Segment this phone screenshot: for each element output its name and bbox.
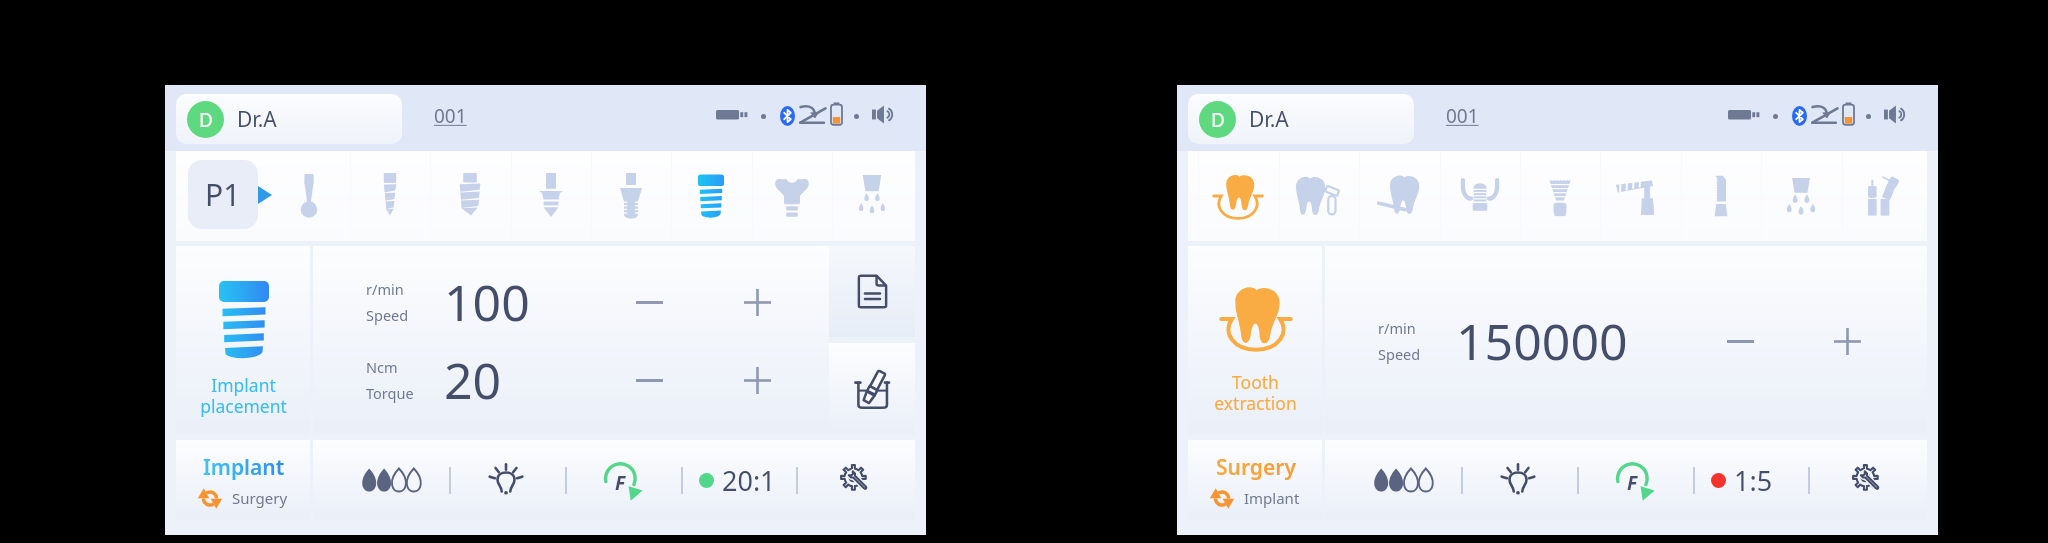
button[interactable]: Light — [1489, 456, 1547, 504]
button[interactable]: Rotation direction — [593, 456, 651, 504]
staticText: Implant — [203, 453, 285, 482]
button[interactable]: Tool 6 — [671, 151, 751, 241]
button[interactable]: Tool 7 — [1681, 151, 1761, 241]
button[interactable]: Decrease Torque — [622, 353, 676, 407]
staticText: F — [1627, 470, 1638, 496]
button[interactable]: D — [1188, 94, 1414, 144]
staticText: r/min — [366, 279, 404, 299]
button[interactable]: Tool 5 — [591, 151, 671, 241]
staticText: Surgery — [232, 488, 288, 508]
button[interactable]: Tool 3 — [1359, 151, 1439, 241]
button[interactable]: Increase Speed — [1820, 314, 1874, 368]
staticText: Implant — [1244, 488, 1300, 508]
staticText: Implant placement — [200, 373, 287, 418]
button[interactable]: Tool 1 — [1198, 151, 1278, 241]
staticText: Dr.A — [237, 105, 277, 134]
staticText: Ncm — [366, 357, 398, 377]
button[interactable]: Settings — [1839, 456, 1897, 504]
button[interactable]: Calibrate — [829, 343, 915, 435]
staticText: Speed — [1378, 344, 1421, 364]
staticText: P1 — [205, 174, 241, 215]
staticText: r/min — [1378, 318, 1416, 338]
button[interactable]: Settings — [827, 456, 885, 504]
staticText: Tooth extraction — [1214, 370, 1297, 415]
button[interactable]: Increase Speed — [730, 275, 784, 329]
staticText: 150000 — [1456, 307, 1628, 375]
button[interactable]: P1 — [188, 160, 258, 229]
button[interactable]: Tool 2 — [1279, 151, 1359, 241]
button[interactable]: Tool 8 — [832, 151, 912, 241]
staticText: 1:5 — [1734, 462, 1773, 499]
button[interactable]: 1:5 — [1711, 456, 1773, 504]
staticText: D — [1211, 107, 1225, 133]
button[interactable]: Tool 2 — [350, 151, 430, 241]
button[interactable]: Increase Torque — [730, 353, 784, 407]
button[interactable]: Implant — [176, 440, 310, 520]
button[interactable]: Tool 8 — [1761, 151, 1841, 241]
staticText: 001 — [1446, 103, 1479, 129]
button[interactable]: Rotation direction — [1605, 456, 1663, 504]
button[interactable]: 001 — [1446, 103, 1479, 129]
button[interactable]: Light — [477, 456, 535, 504]
staticText: 001 — [434, 103, 467, 129]
button[interactable]: Implant placement — [176, 246, 310, 435]
button[interactable]: Decrease Speed — [1713, 314, 1767, 368]
button[interactable]: Tool 5 — [1520, 151, 1600, 241]
staticText: 100 — [444, 268, 530, 336]
button[interactable]: Surgery — [1188, 440, 1322, 520]
button[interactable]: D — [176, 94, 402, 144]
staticText: D — [199, 107, 213, 133]
staticText: F — [615, 470, 626, 496]
button[interactable]: Report — [829, 246, 915, 337]
button[interactable]: Irrigation level — [1365, 456, 1441, 504]
button[interactable]: Irrigation level — [353, 456, 429, 504]
button[interactable]: Tool 3 — [430, 151, 510, 241]
button[interactable]: Tool 6 — [1600, 151, 1680, 241]
button[interactable]: Tool 4 — [1440, 151, 1520, 241]
button[interactable]: 20:1 — [699, 456, 776, 504]
staticText: Torque — [366, 383, 414, 403]
button[interactable]: Tooth extraction — [1188, 246, 1322, 435]
staticText: 20 — [444, 346, 502, 414]
button[interactable]: Tool 1 — [269, 151, 349, 241]
button[interactable]: Decrease Speed — [622, 275, 676, 329]
staticText: 20:1 — [722, 462, 776, 499]
button[interactable]: 001 — [434, 103, 467, 129]
button[interactable]: Tool 4 — [511, 151, 591, 241]
staticText: Speed — [366, 305, 409, 325]
button[interactable]: Tool 7 — [752, 151, 832, 241]
staticText: Dr.A — [1249, 105, 1289, 134]
button[interactable]: Tool 9 — [1842, 151, 1922, 241]
staticText: Surgery — [1216, 453, 1296, 482]
